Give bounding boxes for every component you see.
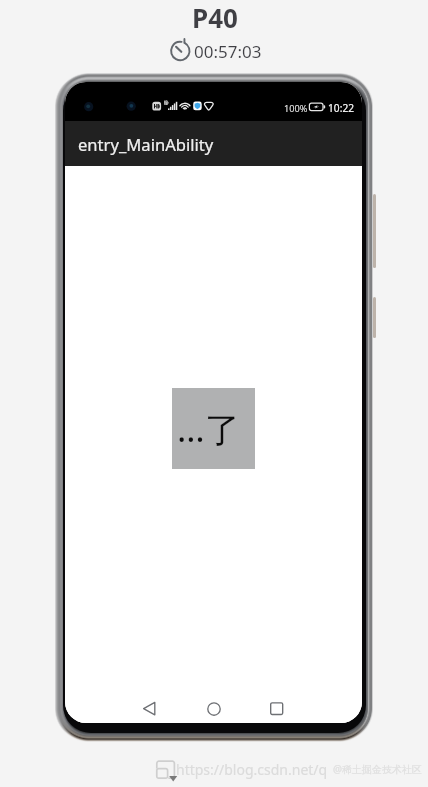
- button[interactable]: …了: [172, 388, 255, 469]
- staticText: 00:57:03: [194, 40, 262, 63]
- staticText: @稀土掘金技术社区: [333, 762, 422, 776]
- button[interactable]: Recent apps: [259, 692, 295, 723]
- button[interactable]: Home: [196, 692, 232, 723]
- staticText: 10:22: [328, 101, 355, 115]
- button[interactable]: Back: [132, 692, 168, 723]
- staticText: entry_MainAbility: [78, 133, 214, 156]
- staticText: P40: [192, 0, 238, 35]
- staticText: …了: [177, 405, 240, 453]
- staticText: https://blog.csdn.net/q: [176, 760, 328, 779]
- staticText: 100%: [284, 102, 308, 115]
